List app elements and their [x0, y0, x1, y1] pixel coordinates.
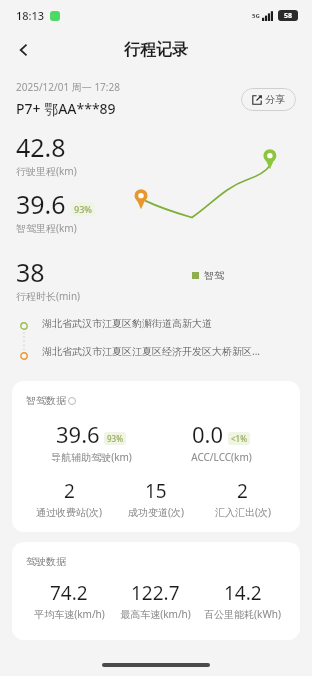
staticText: 14.2 — [224, 580, 262, 606]
button[interactable]: 分享 — [241, 88, 296, 111]
staticText: 38 — [16, 255, 45, 289]
staticText: 58 — [284, 11, 293, 21]
staticText: 2025/12/01 周一 17:28 — [16, 80, 120, 94]
staticText: 驾驶数据 — [26, 555, 66, 568]
staticText: P7+ 鄂AA***89 — [16, 99, 116, 118]
staticText: 湖北省武汉市江夏区豹澥街道高新大道 — [42, 317, 212, 330]
staticText: 智驾 — [204, 269, 224, 282]
staticText: 74.2 — [50, 580, 88, 606]
button[interactable]: Back — [6, 32, 42, 68]
staticText: 行驶里程(km) — [16, 164, 77, 178]
staticText: 行程时长(min) — [16, 289, 81, 303]
staticText: ACC/LCC(km) — [191, 450, 252, 464]
staticText: 最高车速(km/h) — [120, 607, 191, 621]
staticText: 2 — [64, 478, 75, 504]
staticText: 成功变道(次) — [128, 505, 184, 519]
staticText: 智驾数据 — [26, 394, 66, 407]
staticText: 湖北省武汉市江夏区江夏区经济开发区大桥新区... — [42, 344, 261, 358]
staticText: 通过收费站(次) — [36, 505, 102, 519]
staticText: 15 — [145, 478, 167, 504]
staticText: 39.6 — [16, 187, 66, 221]
staticText: 百公里能耗(kWh) — [204, 607, 281, 621]
staticText: 导航辅助驾驶(km) — [51, 450, 132, 464]
staticText: 2 — [237, 478, 248, 504]
staticText: 93% — [107, 433, 123, 444]
staticText: 汇入汇出(次) — [215, 505, 271, 519]
staticText: 5G — [252, 12, 260, 20]
staticText: <1% — [231, 433, 247, 444]
staticText: 122.7 — [131, 580, 180, 606]
staticText: 平均车速(km/h) — [34, 607, 105, 621]
staticText: 39.6 — [56, 419, 100, 449]
staticText: 18:13 — [16, 8, 45, 23]
staticText: 行程记录 — [124, 40, 188, 60]
staticText: 分享 — [265, 93, 285, 106]
staticText: 42.8 — [16, 130, 66, 164]
staticText: 智驾里程(km) — [16, 221, 77, 235]
staticText: 0.0 — [192, 419, 224, 449]
staticText: 93% — [74, 203, 92, 215]
